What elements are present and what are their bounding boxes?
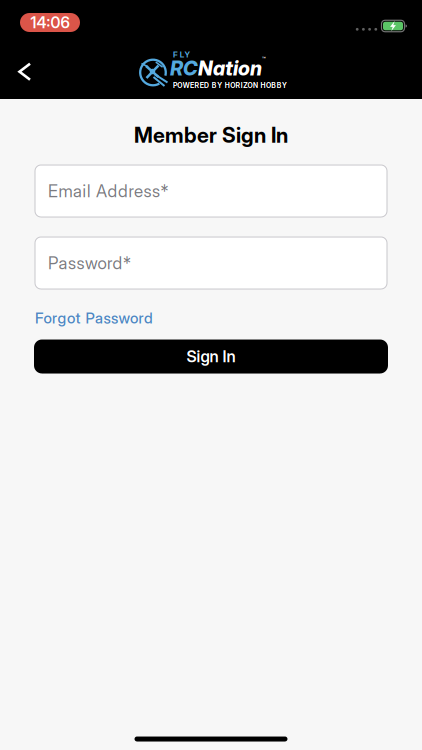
staticText: Nation xyxy=(198,56,262,80)
staticText: RC xyxy=(170,56,198,80)
staticText: Password* xyxy=(48,253,131,273)
button[interactable]: Forgot Password xyxy=(35,309,153,327)
button[interactable]: Sign In xyxy=(34,339,388,373)
staticText: Sign In xyxy=(186,347,235,366)
staticText: FLY xyxy=(173,50,191,59)
button[interactable]: Password* xyxy=(35,237,387,289)
button[interactable]: Email Address* xyxy=(35,165,387,217)
staticText: POWERED BY HORIZON HOBBY xyxy=(173,81,287,90)
button[interactable] xyxy=(5,52,45,92)
staticText: ™ xyxy=(262,56,266,63)
staticText: Email Address* xyxy=(48,181,168,201)
button[interactable]: 14:06 xyxy=(20,13,80,32)
staticText: 14:06 xyxy=(30,13,69,32)
staticText: Member Sign In xyxy=(134,122,288,148)
staticText: Forgot Password xyxy=(35,309,153,327)
